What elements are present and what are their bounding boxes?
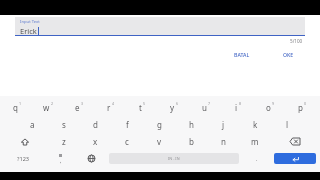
button[interactable]: BATAL [222,48,262,61]
button[interactable]: g [143,117,175,132]
staticText: 5 [143,101,146,106]
staticText: Input Text [20,19,40,25]
button[interactable]: Change keyboard language [76,151,107,166]
button[interactable]: c [111,134,143,149]
staticText: f [126,119,129,130]
staticText: c [125,136,129,147]
button[interactable]: d [79,117,111,132]
staticText: u [202,102,207,113]
staticText: q [13,102,18,113]
staticText: y [170,102,175,113]
button[interactable]: Comma [45,151,76,166]
staticText: m [251,136,259,147]
staticText: Erick [20,26,37,36]
staticText: x [93,136,98,147]
button[interactable]: z [48,134,79,149]
staticText: 0 [304,101,307,106]
staticText: b [189,136,194,147]
staticText: o [266,102,271,113]
button[interactable]: y [158,100,190,115]
staticText: z [62,136,66,147]
button[interactable]: Space [109,153,239,164]
staticText: r [107,102,111,113]
button[interactable]: q [2,100,33,115]
button[interactable]: Backspace [271,134,318,149]
staticText: 7 [208,101,211,106]
staticText: 8 [239,101,242,106]
staticText: BATAL [234,51,250,58]
button[interactable]: t [126,100,158,115]
staticText: k [253,119,258,130]
button[interactable]: w [33,100,64,115]
staticText: d [93,119,98,130]
button[interactable]: ?123 [2,151,45,166]
staticText: t [139,102,142,113]
button[interactable]: e [64,100,95,115]
staticText: e [75,102,80,113]
staticText: g [157,119,162,130]
button[interactable]: l [271,117,303,132]
button[interactable]: h [175,117,207,132]
staticText: p [298,102,303,113]
staticText: 1 [19,101,22,106]
button[interactable]: p [286,100,318,115]
button[interactable]: Input Text [15,17,305,36]
staticText: . [256,155,258,162]
staticText: n [221,136,226,147]
staticText: h [189,119,194,130]
button[interactable]: u [190,100,222,115]
button[interactable]: a [17,117,48,132]
button[interactable]: Enter [274,153,316,164]
button[interactable]: k [239,117,271,132]
staticText: a [30,119,35,130]
staticText: w [43,102,50,113]
button[interactable]: Shift [2,134,48,149]
button[interactable]: b [175,134,207,149]
staticText: ?123 [17,155,30,163]
button[interactable]: i [222,100,254,115]
staticText: 3 [81,101,84,106]
staticText: , [60,157,62,164]
staticText: i [235,102,238,113]
staticText: 6 [176,101,179,106]
staticText: l [286,119,289,130]
staticText: OKE [283,51,294,58]
staticText: s [62,119,66,130]
button[interactable]: f [111,117,143,132]
button[interactable]: s [48,117,79,132]
staticText: 9 [272,101,275,106]
staticText: 5/100 [290,38,303,44]
button[interactable]: r [95,100,126,115]
button[interactable]: v [143,134,175,149]
staticText: 4 [112,101,115,106]
button[interactable]: x [79,134,111,149]
button[interactable]: o [254,100,286,115]
staticText: j [222,119,225,130]
staticText: IN - IN [168,156,180,161]
button[interactable]: n [207,134,239,149]
staticText: 2 [51,101,54,106]
button[interactable]: OKE [268,48,308,61]
staticText: v [157,136,162,147]
button[interactable]: j [207,117,239,132]
button[interactable]: m [239,134,271,149]
